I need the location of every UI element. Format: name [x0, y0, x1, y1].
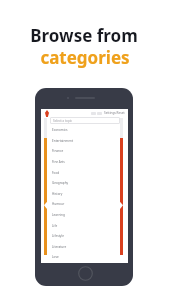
- button[interactable]: History: [41, 188, 128, 199]
- staticText: Literature: [52, 245, 67, 249]
- staticText: categories: [40, 46, 130, 69]
- staticText: Humour: [52, 202, 65, 206]
- staticText: Fine Arts: [52, 160, 65, 164]
- button[interactable]: Humour: [41, 198, 128, 209]
- button[interactable]: Literature: [41, 241, 128, 252]
- staticText: Love: [52, 255, 59, 259]
- button[interactable]: Learning: [41, 209, 128, 220]
- button[interactable]: Logo: [45, 110, 49, 117]
- staticText: Economics: [52, 128, 68, 132]
- button[interactable]: Entertainment: [41, 135, 128, 146]
- button[interactable]: Finance: [41, 145, 128, 156]
- staticText: Browse from: [30, 24, 138, 47]
- staticText: Select a topic: [53, 119, 73, 123]
- button[interactable]: Home: [78, 266, 93, 281]
- staticText: Learning: [52, 213, 65, 217]
- staticText: Settings Reset: [104, 111, 125, 115]
- staticText: History: [52, 192, 63, 196]
- button[interactable]: Fine Arts: [41, 156, 128, 167]
- button[interactable]: Economics: [41, 124, 128, 135]
- staticText: Lifestyle: [52, 234, 64, 238]
- staticText: Life: [52, 224, 58, 228]
- staticText: Geography: [52, 181, 69, 185]
- staticText: Finance: [52, 149, 64, 153]
- staticText: Food: [52, 171, 60, 175]
- button[interactable]: Love: [41, 251, 128, 262]
- staticText: Entertainment: [52, 139, 74, 143]
- button[interactable]: Geography: [41, 177, 128, 188]
- button[interactable]: Lifestyle: [41, 230, 128, 241]
- button[interactable]: Food: [41, 167, 128, 178]
- button[interactable]: Select a topic: [50, 117, 120, 124]
- button[interactable]: Life: [41, 220, 128, 231]
